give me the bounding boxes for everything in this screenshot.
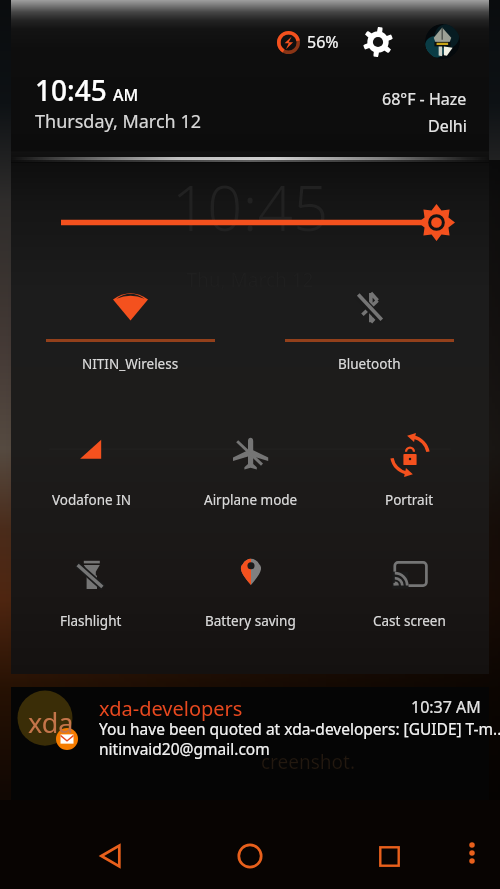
button[interactable]: More options	[452, 833, 492, 873]
button[interactable]: Back	[83, 828, 139, 884]
staticText: Battery saving	[205, 612, 296, 630]
staticText: 10:45	[35, 71, 107, 109]
button[interactable]: 56%	[271, 25, 345, 59]
button[interactable]: Brightness	[11, 163, 489, 239]
button[interactable]: Cast screen	[330, 554, 489, 637]
button[interactable]: creenshot.	[11, 687, 489, 800]
button[interactable]: Vodafone IN	[11, 433, 171, 516]
button[interactable]: Settings	[357, 21, 399, 63]
staticText: 10:45	[11, 165, 489, 249]
staticText: xda	[28, 704, 74, 741]
button[interactable]: Battery saving	[171, 554, 330, 637]
staticText: Cast screen	[373, 612, 446, 630]
button[interactable]: Home	[222, 828, 278, 884]
button[interactable]: User profile	[425, 24, 460, 59]
button[interactable]: Bluetooth	[250, 287, 489, 383]
staticText: Airplane mode	[204, 491, 298, 509]
staticText: 56%	[307, 31, 339, 53]
staticText: Delhi	[428, 115, 467, 137]
button[interactable]: Portrait	[330, 433, 489, 516]
button[interactable]: NITIN_Wireless	[11, 287, 250, 383]
staticText: You have been quoted at xda-developers: …	[99, 718, 500, 739]
button[interactable]: Flashlight	[11, 554, 171, 637]
button[interactable]: Recents	[361, 828, 417, 884]
staticText: nitinvaid20@gmail.com	[99, 738, 270, 759]
staticText: 68°F - Haze	[382, 88, 467, 110]
staticText: Thursday, March 12	[35, 109, 201, 134]
staticText: xda-developers	[99, 695, 243, 722]
staticText: Flashlight	[60, 612, 122, 630]
button[interactable]: Airplane mode	[171, 433, 330, 516]
staticText: NITIN_Wireless	[82, 355, 179, 373]
staticText: 10:37 AM	[411, 696, 481, 718]
staticText: Portrait	[385, 491, 434, 509]
staticText: Bluetooth	[338, 355, 401, 373]
staticText: Vodafone IN	[52, 491, 131, 509]
staticText: creenshot.	[261, 749, 356, 775]
staticText: AM	[113, 84, 139, 106]
